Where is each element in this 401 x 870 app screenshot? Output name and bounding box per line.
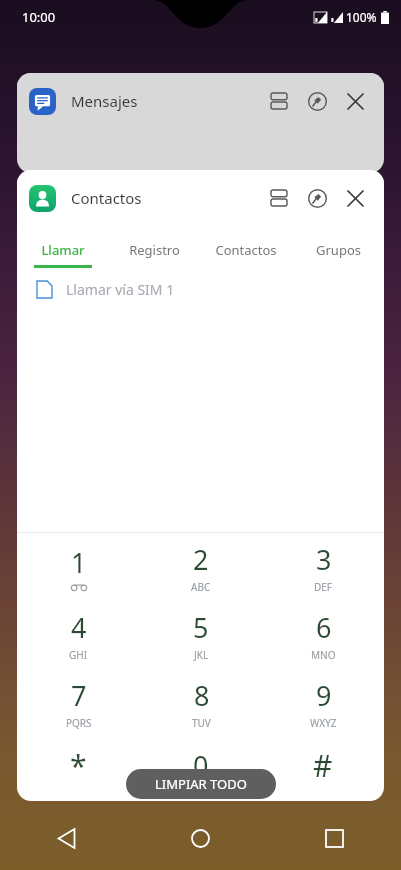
staticText: Contactos bbox=[71, 188, 142, 208]
staticText: GHI bbox=[69, 648, 88, 662]
button[interactable]: 6 bbox=[262, 601, 384, 669]
staticText: 4 bbox=[71, 609, 87, 646]
button[interactable]: Mensajes bbox=[17, 73, 384, 173]
staticText: WXYZ bbox=[310, 716, 337, 730]
staticText: 8 bbox=[194, 677, 210, 714]
button[interactable]: Cerrar bbox=[338, 84, 372, 118]
staticText: 100% bbox=[346, 9, 377, 25]
button[interactable]: Fijar bbox=[300, 84, 334, 118]
button[interactable]: 4 bbox=[17, 601, 140, 669]
button[interactable]: Inicio bbox=[133, 806, 267, 870]
staticText: TUV bbox=[192, 716, 211, 730]
button[interactable]: Fijar bbox=[300, 181, 334, 215]
staticText: 9 bbox=[316, 677, 332, 714]
button[interactable]: Registro bbox=[108, 226, 200, 268]
staticText: DEF bbox=[314, 580, 333, 594]
button[interactable]: Atrás bbox=[0, 806, 133, 870]
staticText: 2 bbox=[193, 541, 209, 578]
button[interactable]: Contactos bbox=[200, 226, 292, 268]
staticText: JKL bbox=[194, 648, 209, 662]
button[interactable]: * bbox=[17, 737, 140, 793]
staticText: * bbox=[70, 745, 87, 786]
button[interactable]: 3 bbox=[262, 533, 384, 601]
staticText: 3 bbox=[316, 541, 332, 578]
button[interactable]: Grupos bbox=[292, 226, 384, 268]
staticText: LIMPIAR TODO bbox=[155, 775, 247, 793]
button[interactable]: Recientes bbox=[267, 806, 401, 870]
staticText: PQRS bbox=[66, 716, 92, 730]
staticText: ABC bbox=[191, 580, 211, 594]
button[interactable]: 7 bbox=[17, 669, 140, 737]
staticText: 6 bbox=[316, 609, 332, 646]
staticText: 5 bbox=[193, 609, 209, 646]
staticText: 10:00 bbox=[22, 8, 56, 26]
button[interactable]: Pantalla dividida bbox=[262, 181, 296, 215]
button[interactable]: Pantalla dividida bbox=[262, 84, 296, 118]
button[interactable]: 2 bbox=[140, 533, 262, 601]
staticText: 0 bbox=[193, 747, 209, 784]
button[interactable]: 1 bbox=[17, 533, 140, 601]
staticText: MNO bbox=[311, 648, 336, 662]
staticText: Contactos bbox=[215, 241, 277, 259]
staticText: Llamar bbox=[41, 241, 85, 259]
staticText: Grupos bbox=[316, 241, 361, 259]
button[interactable]: Llamar bbox=[17, 226, 108, 268]
button[interactable]: Llamar vía SIM 1 bbox=[37, 268, 384, 310]
staticText: 1 bbox=[71, 544, 87, 581]
button[interactable]: # bbox=[262, 737, 384, 793]
button[interactable]: 5 bbox=[140, 601, 262, 669]
staticText: Registro bbox=[129, 241, 180, 259]
button[interactable]: 0 bbox=[140, 737, 262, 793]
button[interactable]: Cerrar bbox=[338, 181, 372, 215]
staticText: 7 bbox=[71, 677, 87, 714]
staticText: Mensajes bbox=[71, 91, 138, 111]
button[interactable]: LIMPIAR TODO bbox=[126, 769, 276, 799]
staticText: Llamar vía SIM 1 bbox=[66, 280, 175, 299]
staticText: # bbox=[313, 745, 333, 786]
button[interactable]: 8 bbox=[140, 669, 262, 737]
button[interactable]: 9 bbox=[262, 669, 384, 737]
